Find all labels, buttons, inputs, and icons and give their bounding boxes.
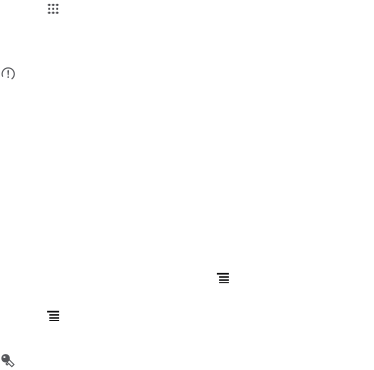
button[interactable]: Apps grid	[48, 3, 59, 14]
button[interactable]: Text alignment	[217, 273, 229, 283]
button[interactable]: Key	[1, 354, 16, 369]
button[interactable]: Alert	[1, 67, 15, 81]
button[interactable]: Text alignment	[47, 311, 59, 321]
